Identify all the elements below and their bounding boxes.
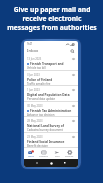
button[interactable]: 28 May 2023 [24,117,78,133]
button[interactable]: Home [50,162,53,165]
staticText: Contacts [39,155,48,158]
button[interactable]: 3 Jun 2023 [24,71,78,86]
staticText: Traffic penalty fee [27,82,51,86]
staticText: Inbox [27,48,39,54]
staticText: Vehicle tax bill [27,66,46,70]
staticText: 30 May 2023 [27,104,43,108]
staticText: Cadastral survey document [27,128,63,132]
staticText: 23 May 2023 [27,135,43,139]
button[interactable]: 23 May 2023 [24,133,78,148]
staticText: 28 May 2023 [27,119,43,123]
staticText: Finnish Tax Administration [30,109,72,113]
button[interactable]: Sent [53,150,61,158]
staticText: Police of Finland [27,78,53,82]
button[interactable]: Settings [64,150,75,158]
staticText: 3 Jun 2023 [27,73,40,77]
button[interactable]: 30 May 2023 [24,102,78,117]
staticText: 1 Jun 2023 [27,88,40,92]
button[interactable]: 1 Jun 2023 [24,86,78,102]
staticText: 13 Jun 2023 [27,57,42,61]
button[interactable]: Search [70,49,75,54]
staticText: 9:41 [27,42,33,46]
staticText: National Land Survey of Finland [27,124,75,128]
staticText: Finnish Transport and Communicatio... [30,62,75,66]
staticText: Benefit decision [27,144,48,148]
staticText: Settings [65,155,74,158]
button[interactable]: Contacts [38,150,49,158]
staticText: Digital and Population Data Servi... [27,93,75,97]
button[interactable]: Inbox [27,150,35,158]
staticText: Give up paper mail and receive electroni… [7,5,97,32]
staticText: Personal data update [27,97,56,101]
staticText: Finland Social Insurance Institution [27,140,75,144]
staticText: Advance tax decision [27,113,55,117]
staticText: Inbox [28,155,34,158]
staticText: Sent [55,155,60,158]
button[interactable]: 13 Jun 2023 [24,55,78,71]
button[interactable]: Recents [64,162,66,164]
